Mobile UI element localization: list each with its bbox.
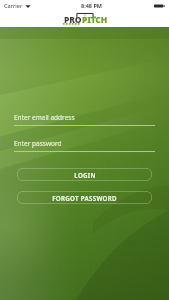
button[interactable]: FORGOT PASSWORD	[17, 191, 152, 204]
staticText: LOGIN	[74, 171, 96, 179]
staticText: Enter email address	[14, 113, 75, 122]
staticText: Carrier	[4, 2, 23, 9]
button[interactable]: Enter password	[14, 138, 155, 152]
staticText: PRO	[64, 14, 82, 26]
staticText: Enter password	[14, 139, 62, 148]
staticText: FORGOT PASSWORD	[52, 194, 117, 202]
other: ProPitch logo	[58, 12, 112, 26]
button[interactable]: Enter email address	[14, 112, 155, 126]
staticText: PITCH	[82, 14, 107, 26]
staticText: 8:48 PM	[81, 2, 103, 9]
button[interactable]: LOGIN	[17, 168, 152, 181]
